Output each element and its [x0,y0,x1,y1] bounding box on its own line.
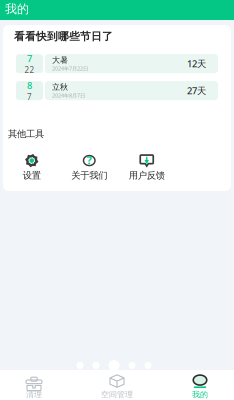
button[interactable]: ? [60,154,118,181]
staticText: 12天 [187,57,206,70]
button[interactable]: 用户反馈 [118,154,175,181]
staticText: 关于我们 [71,170,107,181]
button[interactable]: 8 [16,81,218,100]
button[interactable]: 7 [16,54,218,73]
staticText: 2024年8月7日 [52,92,85,99]
staticText: 设置 [23,170,41,181]
staticText: 清理 [26,390,42,399]
staticText: 8 [27,79,32,91]
button[interactable]: 设置 [3,154,60,181]
button[interactable]: 我的 [177,372,223,398]
staticText: 其他工具 [8,128,44,140]
staticText: 立秋 [52,82,68,92]
staticText: 空间管理 [101,390,133,399]
button[interactable]: 清理 [11,372,57,398]
staticText: 看看快到哪些节日了 [14,30,113,43]
staticText: 我的 [192,390,208,399]
staticText: 我的 [5,2,29,16]
staticText: 2024年7月22日 [52,65,88,72]
staticText: 7 [27,52,32,64]
staticText: 用户反馈 [129,170,165,181]
button[interactable]: 空间管理 [94,372,140,398]
staticText: 22 [24,64,34,75]
staticText: 27天 [187,84,206,97]
staticText: ? [87,153,92,167]
staticText: 7 [27,91,32,102]
staticText: 大暑 [52,55,68,65]
